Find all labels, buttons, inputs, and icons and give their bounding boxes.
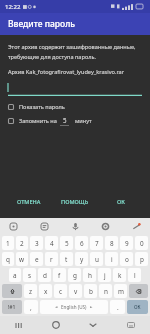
- button[interactable]: b: [84, 284, 97, 298]
- staticText: ◄: [55, 305, 58, 309]
- button[interactable]: d: [38, 268, 51, 282]
- button[interactable]: 0: [135, 236, 148, 250]
- button[interactable]: 3: [30, 236, 43, 250]
- staticText: ОК: [134, 304, 141, 310]
- button[interactable]: 6: [75, 236, 88, 250]
- button[interactable]: Shift: [2, 284, 22, 298]
- staticText: g: [73, 271, 77, 280]
- staticText: .: [117, 303, 119, 312]
- staticText: e: [35, 255, 39, 264]
- staticText: минут: [75, 117, 92, 125]
- staticText: !#1: [8, 304, 16, 311]
- staticText: t: [65, 255, 68, 264]
- button[interactable]: u: [90, 252, 103, 266]
- staticText: c: [59, 287, 63, 296]
- button[interactable]: k: [113, 268, 126, 282]
- staticText: s: [28, 271, 32, 280]
- button[interactable]: p: [135, 252, 148, 266]
- staticText: m: [118, 287, 124, 296]
- button[interactable]: 5: [60, 236, 73, 250]
- button[interactable]: r: [45, 252, 58, 266]
- button[interactable]: f: [53, 268, 66, 282]
- staticText: English (US): [61, 304, 87, 310]
- button[interactable]: g: [68, 268, 81, 282]
- button[interactable]: More: [131, 221, 142, 232]
- staticText: Архив Kak_fotografirovat_lyudey_krasivo.…: [8, 68, 125, 76]
- staticText: Запомнить на: [19, 117, 57, 125]
- staticText: o: [125, 255, 129, 264]
- staticText: ►: [90, 305, 93, 309]
- button[interactable]: j: [98, 268, 111, 282]
- button[interactable]: ,: [24, 300, 38, 314]
- button[interactable]: Settings: [100, 221, 111, 232]
- staticText: f: [58, 271, 61, 280]
- staticText: ПОМОЩЬ: [61, 198, 89, 206]
- staticText: 7: [95, 239, 99, 248]
- staticText: 5: [65, 239, 69, 248]
- button[interactable]: h: [83, 268, 96, 282]
- staticText: Показать пароль: [19, 103, 65, 111]
- staticText: q: [6, 255, 10, 264]
- staticText: 2: [20, 239, 24, 248]
- staticText: 6: [80, 239, 84, 248]
- button[interactable]: Recents: [0, 316, 37, 334]
- button[interactable]: z: [24, 284, 37, 298]
- button[interactable]: ◄: [40, 300, 108, 314]
- button[interactable]: w: [16, 252, 28, 266]
- button[interactable]: i: [105, 252, 118, 266]
- button[interactable]: c: [54, 284, 67, 298]
- staticText: b: [89, 287, 93, 296]
- button[interactable]: ОК: [98, 195, 144, 209]
- staticText: 12:22: [5, 3, 21, 11]
- staticText: k: [118, 271, 122, 280]
- button[interactable]: [8, 82, 142, 96]
- button[interactable]: t: [60, 252, 73, 266]
- button[interactable]: Voice input: [70, 221, 81, 232]
- button[interactable]: 1: [2, 236, 14, 250]
- button[interactable]: ОТМЕНА: [6, 195, 52, 209]
- staticText: h: [88, 271, 92, 280]
- button[interactable]: Hide keyboard: [74, 316, 112, 334]
- staticText: ,: [30, 303, 32, 312]
- staticText: 0: [140, 239, 144, 248]
- button[interactable]: l: [128, 268, 141, 282]
- button[interactable]: Clipboard: [39, 221, 50, 232]
- button[interactable]: Keyboard layout: [112, 316, 150, 334]
- staticText: n: [104, 287, 108, 296]
- button[interactable]: !#1: [2, 300, 22, 314]
- staticText: z: [29, 287, 33, 296]
- button[interactable]: q: [2, 252, 14, 266]
- button[interactable]: ОК: [127, 300, 148, 314]
- button[interactable]: x: [39, 284, 52, 298]
- staticText: x: [44, 287, 48, 296]
- button[interactable]: Stickers: [8, 221, 19, 232]
- button[interactable]: Home: [37, 316, 74, 334]
- button[interactable]: a: [9, 268, 21, 282]
- button[interactable]: Backspace: [129, 284, 148, 298]
- staticText: p: [140, 255, 144, 264]
- button[interactable]: y: [75, 252, 88, 266]
- button[interactable]: 4: [45, 236, 58, 250]
- button[interactable]: .: [110, 300, 125, 314]
- staticText: Введите пароль: [8, 18, 75, 30]
- staticText: l: [134, 271, 136, 280]
- staticText: y: [80, 255, 84, 264]
- button[interactable]: 9: [120, 236, 133, 250]
- button[interactable]: s: [23, 268, 36, 282]
- button[interactable]: Показать пароль: [8, 103, 65, 111]
- staticText: 5: [63, 116, 67, 124]
- button[interactable]: 8: [105, 236, 118, 250]
- button[interactable]: 7: [90, 236, 103, 250]
- button[interactable]: ПОМОЩЬ: [52, 195, 98, 209]
- button[interactable]: 2: [16, 236, 28, 250]
- staticText: 9: [125, 239, 129, 248]
- button[interactable]: v: [69, 284, 82, 298]
- staticText: 8: [110, 239, 114, 248]
- staticText: v: [74, 287, 78, 296]
- staticText: Этот архив содержит зашифрованные данные…: [8, 43, 136, 51]
- button[interactable]: m: [114, 284, 127, 298]
- button[interactable]: o: [120, 252, 133, 266]
- button[interactable]: n: [99, 284, 112, 298]
- staticText: j: [104, 271, 106, 280]
- button[interactable]: e: [30, 252, 43, 266]
